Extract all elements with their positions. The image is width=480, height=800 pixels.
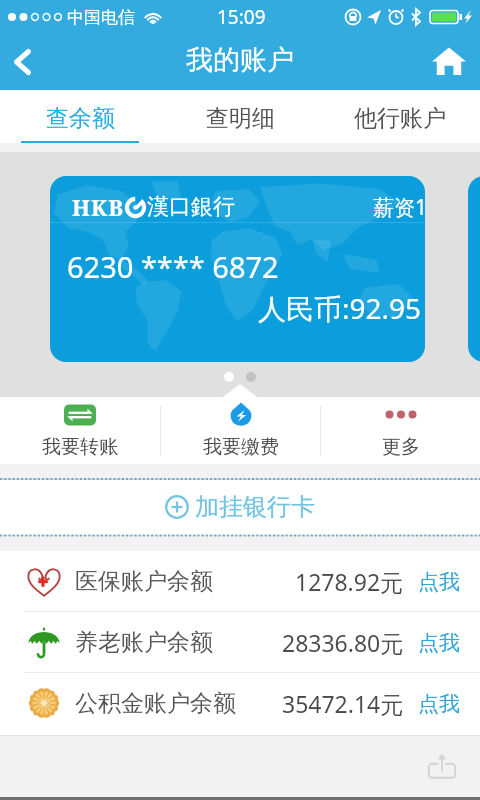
button[interactable]: Home [424,34,480,90]
button[interactable]: 查明细 [160,90,320,143]
staticText: 点我 [418,630,460,656]
button[interactable]: Share [420,744,464,788]
button[interactable]: 我要缴费 [161,397,320,464]
staticText: 35472.14元 [282,688,404,719]
staticText: 查明细 [206,104,275,133]
staticText: 人民币:92.95 [258,289,422,327]
staticText: 点我 [418,691,460,717]
button[interactable]: 加挂银行卡 [0,480,480,535]
staticText: 加挂银行卡 [195,492,315,522]
staticText: 公积金账户余额 [75,689,236,718]
staticText: 我要转账 [42,435,118,459]
staticText: 更多 [382,435,420,459]
staticText: 1278.92元 [295,566,404,597]
button[interactable]: Back [0,34,52,90]
button[interactable]: 公积金账户余额 [0,673,480,733]
staticText: 中国电信 [67,7,135,28]
staticText: 我要缴费 [203,435,279,459]
button[interactable]: 查余额 [0,90,160,143]
staticText: 医保账户余额 [75,567,213,596]
staticText: 他行账户 [354,104,446,133]
staticText: 点我 [418,569,460,595]
staticText: 28336.80元 [282,627,404,658]
button[interactable]: 薪资1 [50,176,425,362]
button[interactable]: 更多 [321,397,480,464]
button[interactable]: 我要转账 [0,397,160,464]
staticText: HKB [72,192,124,222]
staticText: 15:09 [217,4,266,30]
staticText: 查余额 [46,104,115,133]
button[interactable]: 医保账户余额 [0,551,480,611]
staticText: 薪资1 [373,193,425,222]
button[interactable]: 他行账户 [320,90,480,143]
staticText: 6230 **** 6872 [67,247,279,286]
staticText: 养老账户余额 [75,628,213,657]
button[interactable]: 养老账户余额 [0,612,480,672]
staticText: 我的账户 [186,43,294,77]
staticText: 漢口銀行 [147,193,235,221]
